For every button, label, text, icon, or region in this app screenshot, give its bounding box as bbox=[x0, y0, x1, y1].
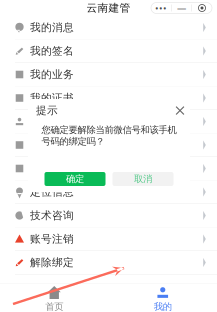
staticText: 取消 bbox=[134, 173, 152, 185]
button[interactable]: 技术咨询 bbox=[0, 204, 217, 227]
button[interactable]: 我的 bbox=[108, 286, 217, 312]
staticText: 提示 bbox=[36, 104, 58, 117]
button[interactable]: 确定 bbox=[44, 172, 105, 186]
staticText: 确定 bbox=[66, 173, 84, 185]
button[interactable]: 我的签名 bbox=[0, 39, 217, 63]
button[interactable]: 我的消息 bbox=[0, 16, 217, 39]
button[interactable]: 我的证书 bbox=[0, 86, 217, 110]
button[interactable]: Minimize bbox=[171, 2, 191, 13]
staticText: 定位信息 bbox=[30, 185, 74, 198]
button[interactable]: 我的业务 bbox=[0, 63, 217, 86]
button[interactable]: 解除绑定 bbox=[0, 251, 217, 274]
staticText: 我的签名 bbox=[30, 44, 74, 57]
button[interactable]: 设备信息 bbox=[0, 157, 217, 180]
staticText: 解除绑定 bbox=[30, 256, 74, 269]
button[interactable]: Close bbox=[192, 2, 212, 13]
staticText: 我的业务 bbox=[30, 68, 74, 81]
button[interactable]: 首页 bbox=[0, 286, 108, 312]
button[interactable]: 我的收藏 bbox=[0, 133, 217, 157]
staticText: 我的 bbox=[154, 301, 172, 312]
button[interactable]: 取消 bbox=[112, 172, 173, 186]
staticText: 云南建管 bbox=[86, 1, 130, 14]
button[interactable]: 定位信息 bbox=[0, 180, 217, 204]
staticText: 我的证书 bbox=[30, 91, 74, 104]
button[interactable]: Close bbox=[174, 105, 186, 117]
staticText: 我的收藏 bbox=[30, 138, 74, 151]
staticText: 首页 bbox=[45, 301, 63, 312]
staticText: 个人信息 bbox=[30, 115, 74, 128]
staticText: 设备信息 bbox=[30, 162, 74, 175]
staticText: 我的消息 bbox=[30, 21, 74, 34]
button[interactable]: 个人信息 bbox=[0, 110, 217, 133]
staticText: 账号注销 bbox=[30, 232, 74, 245]
button[interactable]: 账号注销 bbox=[0, 227, 217, 251]
button[interactable]: More bbox=[151, 2, 171, 13]
staticText: 技术咨询 bbox=[30, 209, 74, 222]
staticText: 您确定要解除当前微信号和该手机号码的绑定吗？ bbox=[41, 124, 176, 147]
staticText: ••• bbox=[155, 2, 167, 14]
staticText: — bbox=[177, 2, 186, 14]
